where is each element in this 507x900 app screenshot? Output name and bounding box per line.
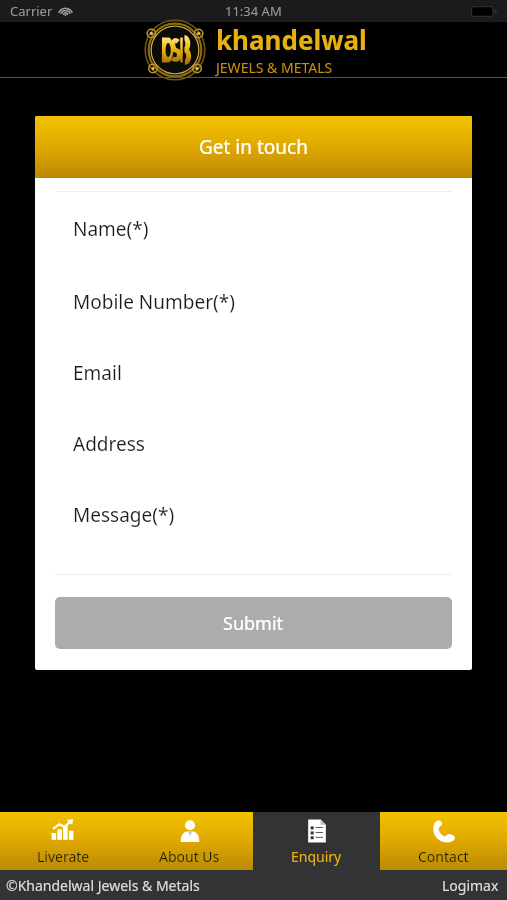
button[interactable]: Message(*) xyxy=(35,479,472,550)
button[interactable]: Email xyxy=(35,337,472,408)
staticText: Logimax xyxy=(442,876,499,895)
staticText: Message(*) xyxy=(73,502,175,528)
staticText: ©Khandelwal Jewels & Metals xyxy=(6,876,200,895)
staticText: Email xyxy=(73,360,122,386)
button[interactable]: Address xyxy=(35,408,472,479)
staticText: Submit xyxy=(223,611,284,636)
staticText: 11:34 AM xyxy=(225,2,282,20)
staticText: Enquiry xyxy=(291,847,342,866)
button[interactable]: Liverate xyxy=(0,812,126,870)
button[interactable]: Enquiry xyxy=(253,812,380,870)
staticText: JEWELS & METALS xyxy=(216,58,333,77)
staticText: Liverate xyxy=(37,847,90,866)
button[interactable]: Mobile Number(*) xyxy=(35,266,472,337)
staticText: Get in touch xyxy=(199,134,308,160)
staticText: Address xyxy=(73,431,145,457)
staticText: Carrier xyxy=(10,2,53,20)
staticText: Name(*) xyxy=(73,216,149,242)
staticText: Contact xyxy=(418,847,469,866)
button[interactable]: About Us xyxy=(126,812,253,870)
staticText: Mobile Number(*) xyxy=(73,289,235,315)
staticText: khandelwal xyxy=(216,22,367,57)
button[interactable]: Name(*) xyxy=(35,192,472,266)
button[interactable]: Contact xyxy=(380,812,507,870)
button[interactable]: Submit xyxy=(55,597,452,649)
staticText: About Us xyxy=(159,847,220,866)
